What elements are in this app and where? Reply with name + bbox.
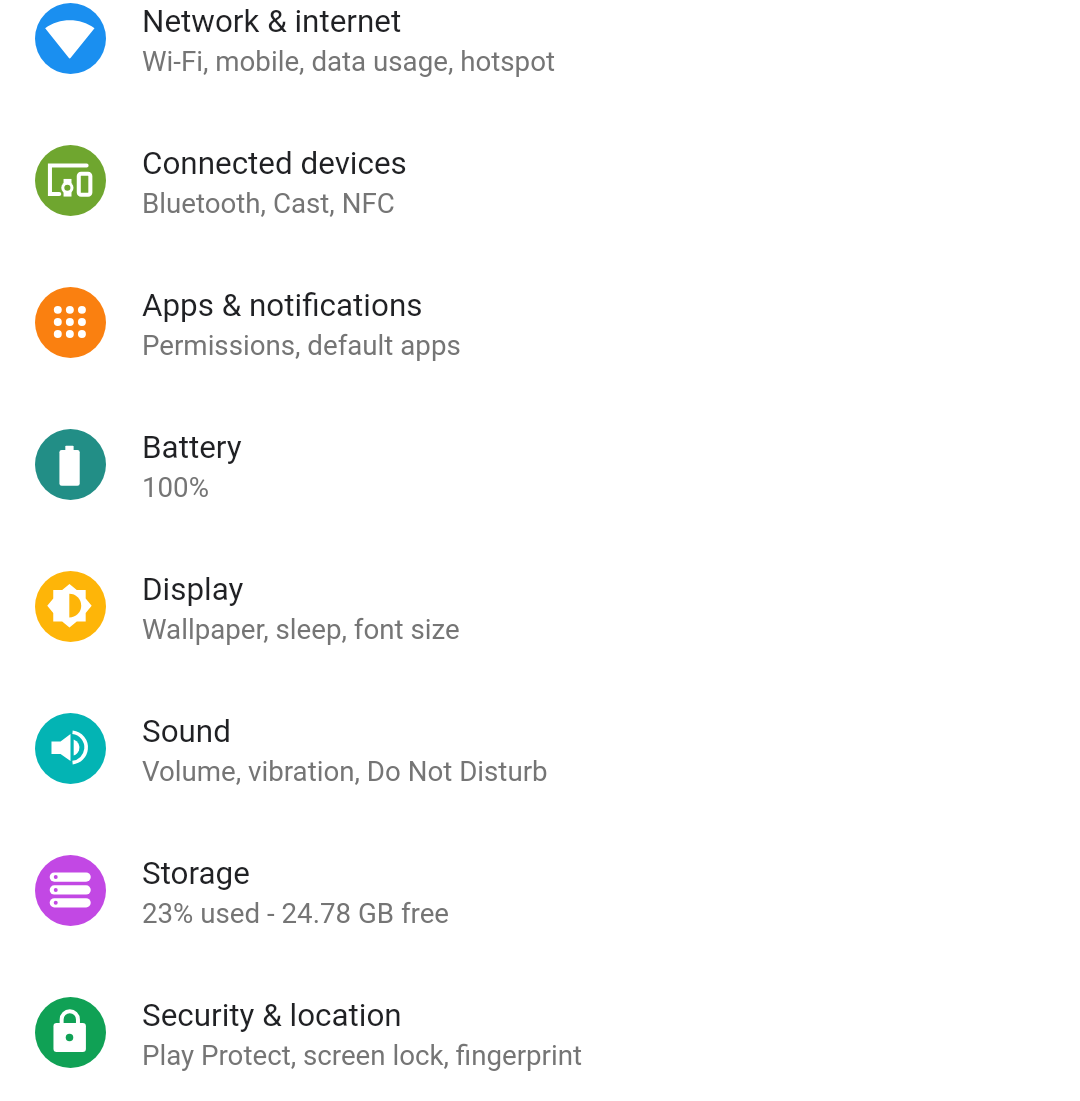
button[interactable]: Security & location (0, 961, 1080, 1101)
button[interactable]: Storage (0, 819, 1080, 961)
button[interactable]: Network & internet (0, 0, 1080, 109)
staticText: Volume, vibration, Do Not Disturb (142, 755, 548, 787)
staticText: Wallpaper, sleep, font size (142, 613, 460, 645)
staticText: 100% (142, 471, 209, 503)
staticText: Wi-Fi, mobile, data usage, hotspot (142, 45, 555, 77)
staticText: Play Protect, screen lock, fingerprint (142, 1039, 583, 1071)
button[interactable]: Display (0, 535, 1080, 677)
staticText: Permissions, default apps (142, 329, 461, 361)
button[interactable]: Battery (0, 393, 1080, 535)
staticText: Security & location (142, 997, 402, 1034)
staticText: Apps & notifications (142, 287, 423, 324)
staticText: Battery (142, 429, 242, 466)
staticText: 23% used - 24.78 GB free (142, 897, 450, 929)
staticText: Network & internet (142, 3, 402, 40)
button[interactable]: Apps & notifications (0, 251, 1080, 393)
staticText: Sound (142, 713, 231, 750)
staticText: Storage (142, 855, 250, 892)
staticText: Display (142, 571, 244, 608)
staticText: Connected devices (142, 145, 407, 182)
button[interactable]: Sound (0, 677, 1080, 819)
staticText: Bluetooth, Cast, NFC (142, 187, 395, 219)
button[interactable]: Connected devices (0, 109, 1080, 251)
